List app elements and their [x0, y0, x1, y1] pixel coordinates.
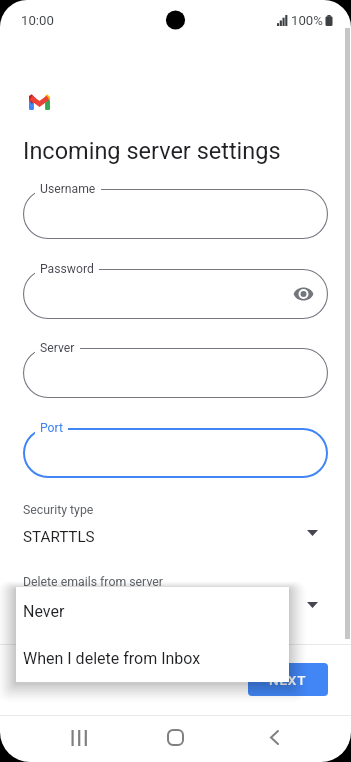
button[interactable]: When I delete from Inbox — [16, 634, 289, 681]
staticText: Incoming server settings — [23, 137, 281, 165]
button[interactable]: Password — [23, 269, 328, 319]
button[interactable]: Home — [154, 716, 197, 759]
staticText: When I delete from Inbox — [23, 649, 201, 668]
staticText: STARTTLS — [23, 528, 95, 546]
staticText: Never — [23, 602, 65, 621]
button[interactable]: Port — [23, 428, 328, 478]
staticText: 10:00 — [21, 13, 54, 28]
staticText: Username — [40, 182, 96, 196]
button[interactable]: Show password — [289, 280, 317, 308]
staticText: Security type — [23, 503, 94, 517]
button[interactable]: Security type — [0, 502, 351, 550]
staticText: Port — [40, 421, 63, 435]
button[interactable]: Server — [23, 348, 328, 398]
staticText: Delete emails from server — [23, 575, 163, 589]
button[interactable]: Never — [16, 587, 289, 634]
staticText: Server — [40, 341, 75, 355]
button[interactable]: Username — [23, 189, 328, 239]
button[interactable]: Back — [253, 716, 296, 759]
staticText: Password — [40, 262, 94, 276]
button[interactable]: NEXT — [248, 663, 328, 696]
button[interactable]: Recent apps — [57, 716, 100, 759]
staticText: Never — [23, 600, 63, 618]
staticText: NEXT — [269, 672, 307, 688]
button[interactable]: Delete emails from server — [0, 574, 351, 622]
staticText: 100% — [291, 13, 323, 28]
